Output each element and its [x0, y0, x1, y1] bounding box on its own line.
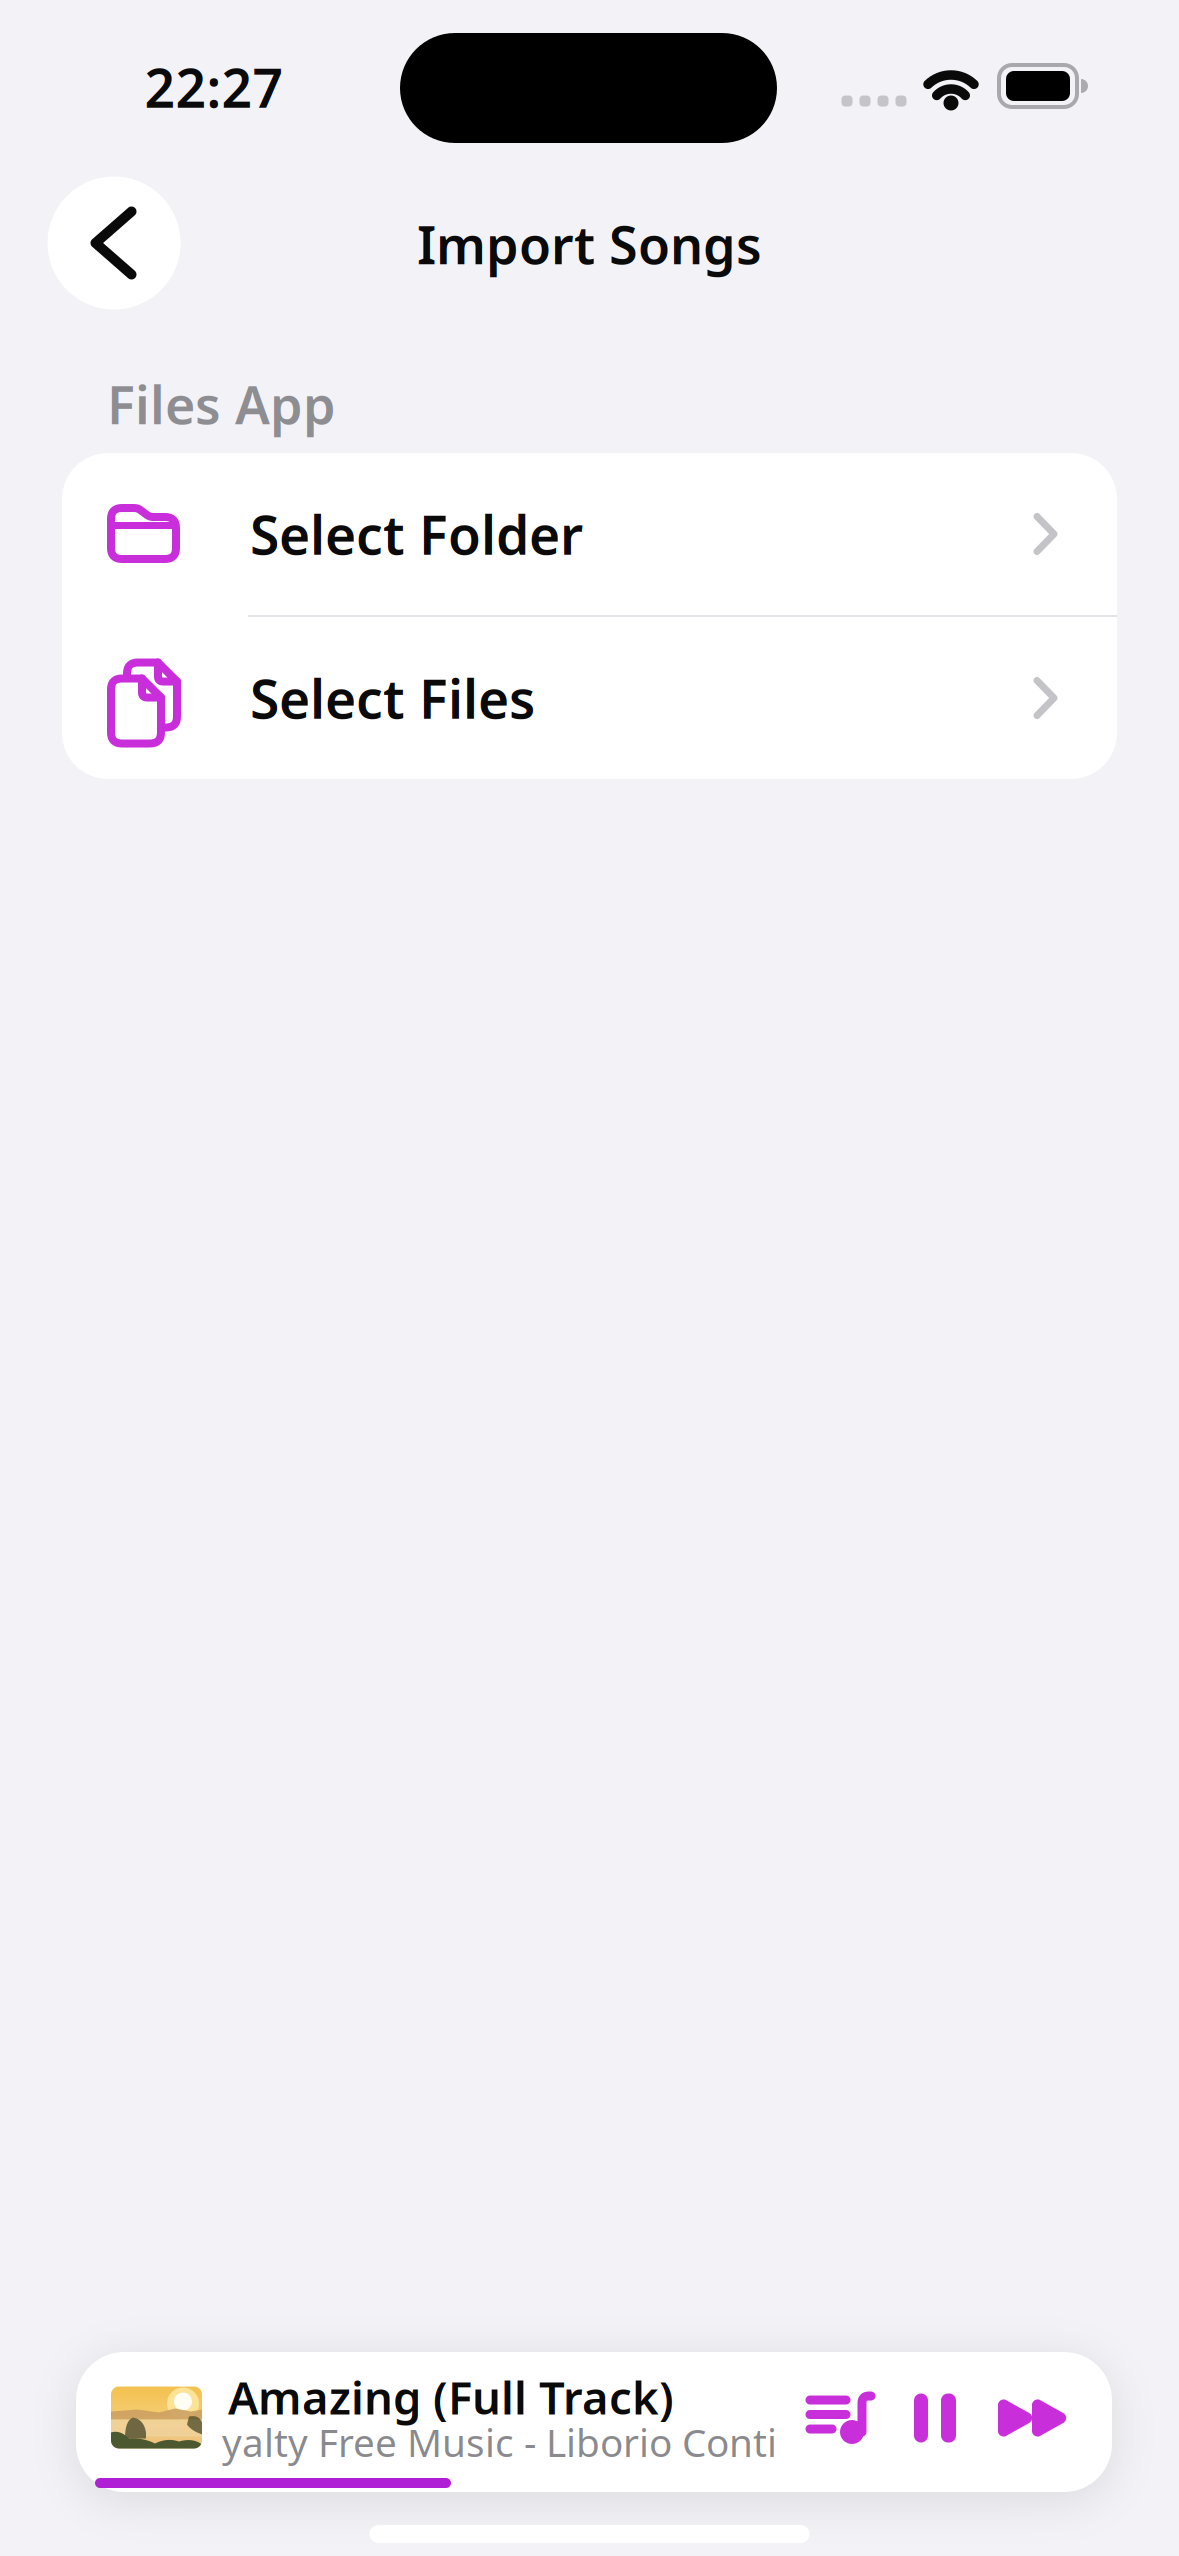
staticText: Import Songs [417, 209, 762, 279]
staticText: Amazing (Full Track) [228, 2367, 674, 2427]
staticText: 22:27 [144, 52, 283, 122]
button[interactable]: Back [47, 176, 180, 309]
button[interactable]: Queue [806, 2394, 874, 2444]
button[interactable]: Pause [914, 2393, 956, 2442]
button[interactable]: Select Files [62, 617, 1117, 779]
staticText: Files App [107, 369, 336, 439]
button[interactable]: Next [996, 2396, 1068, 2440]
staticText: yalty Free Music - Liborio Conti [222, 2416, 777, 2468]
staticText: Select Folder [250, 499, 583, 569]
button[interactable]: Select Folder [62, 453, 1117, 615]
staticText: Select Files [250, 663, 535, 733]
